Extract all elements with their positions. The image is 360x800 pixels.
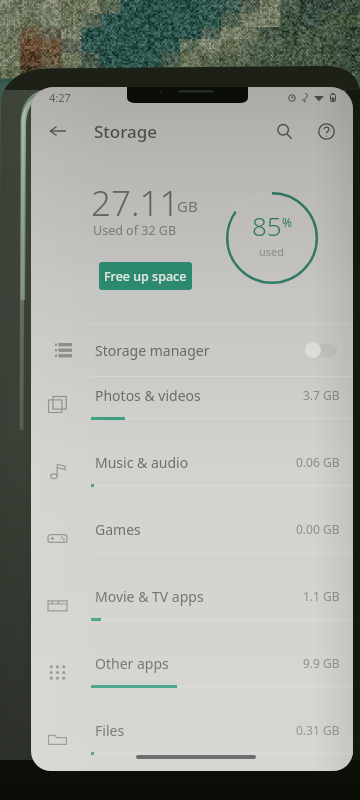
staticText: 3.7 GB [303, 387, 340, 403]
button[interactable]: Other apps [31, 645, 353, 712]
staticText: 85 [252, 208, 282, 243]
button[interactable]: Files [31, 712, 353, 771]
button[interactable]: Storage manager [31, 324, 353, 376]
button[interactable]: Back [38, 111, 78, 151]
button[interactable]: Movie & TV apps [31, 578, 353, 645]
staticText: 0.00 GB [296, 521, 340, 537]
staticText: Files [95, 721, 125, 740]
staticText: Movie & TV apps [95, 587, 204, 606]
staticText: Music & audio [95, 453, 189, 472]
button[interactable]: Help [305, 110, 347, 152]
button[interactable]: Free up space [99, 262, 192, 290]
staticText: 0.06 GB [296, 454, 340, 470]
staticText: Free up space [104, 268, 187, 285]
staticText: % [282, 214, 292, 230]
staticText: 4:27 [49, 90, 71, 105]
staticText: Storage manager [95, 341, 210, 360]
staticText: GB [177, 196, 198, 216]
staticText: Other apps [95, 654, 169, 673]
staticText: 1.1 GB [303, 588, 340, 604]
staticText: 27.11 [91, 179, 180, 227]
staticText: 0.31 GB [296, 722, 340, 738]
button[interactable]: Search [263, 110, 305, 152]
staticText: Games [95, 520, 141, 539]
staticText: Used of 32 GB [93, 222, 177, 239]
staticText: 9.9 GB [303, 655, 340, 671]
staticText: Photos & videos [95, 386, 201, 405]
staticText: used [259, 244, 285, 259]
button[interactable]: Music & audio [31, 444, 353, 511]
staticText: Storage [94, 120, 158, 143]
button[interactable]: Photos & videos [31, 377, 353, 444]
button[interactable]: Games [31, 511, 353, 578]
